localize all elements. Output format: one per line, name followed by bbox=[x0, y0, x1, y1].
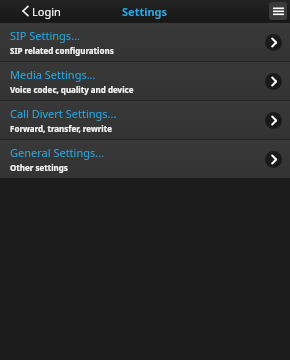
button[interactable]: Media Settings... bbox=[0, 62, 290, 100]
button[interactable]: Open Call Divert Settings... bbox=[265, 112, 282, 129]
button[interactable]: SIP Settings... bbox=[0, 23, 290, 61]
staticText: Other settings bbox=[10, 162, 68, 173]
staticText: General Settings... bbox=[10, 145, 105, 160]
button[interactable]: Login bbox=[22, 0, 61, 22]
button[interactable]: Open SIP Settings... bbox=[265, 34, 282, 51]
button[interactable]: Menu bbox=[269, 2, 287, 20]
staticText: SIP related configurations bbox=[10, 45, 114, 56]
button[interactable]: General Settings... bbox=[0, 140, 290, 178]
button[interactable]: Open Media Settings... bbox=[265, 73, 282, 90]
staticText: Forward, transfer, rewrite bbox=[10, 123, 112, 134]
button[interactable]: Open General Settings... bbox=[265, 151, 282, 168]
staticText: Settings bbox=[122, 4, 168, 19]
staticText: Voice codec, quality and device bbox=[10, 84, 134, 95]
staticText: Login bbox=[32, 4, 61, 19]
button[interactable]: Call Divert Settings... bbox=[0, 101, 290, 139]
staticText: Call Divert Settings... bbox=[10, 106, 117, 121]
staticText: SIP Settings... bbox=[10, 28, 80, 43]
staticText: Media Settings... bbox=[10, 67, 96, 82]
